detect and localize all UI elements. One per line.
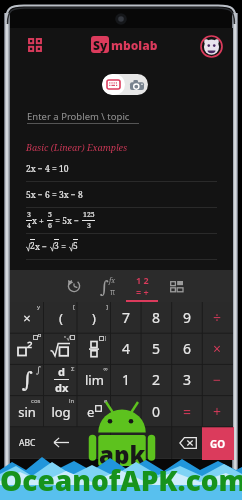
- button[interactable]: log: [44, 396, 78, 427]
- staticText: d: [58, 364, 65, 379]
- staticText: = 5x −: [53, 215, 82, 227]
- staticText: 125: [83, 210, 95, 220]
- staticText: 8: [152, 308, 161, 327]
- button[interactable]: =: [172, 396, 203, 427]
- staticText: e: [104, 397, 108, 405]
- staticText: ABC: [19, 437, 36, 449]
- button[interactable]: +: [202, 396, 233, 427]
- button[interactable]: lim: [77, 364, 111, 395]
- button[interactable]: (: [44, 302, 78, 333]
- button[interactable]: 5x − 6 = 3x − 8: [26, 182, 217, 208]
- staticText: |: [104, 334, 108, 342]
- staticText: log: [51, 403, 71, 421]
- staticText: ∫: [36, 365, 41, 375]
- button[interactable]: e: [77, 396, 111, 427]
- button[interactable]: ×: [202, 333, 233, 364]
- button[interactable]: ABC: [10, 427, 44, 458]
- button[interactable]: GO: [202, 427, 234, 460]
- staticText: 0: [152, 402, 161, 421]
- staticText: +: [213, 402, 222, 421]
- staticText: ∫: [100, 277, 109, 297]
- staticText: Σ: [71, 365, 75, 373]
- staticText: cos: [31, 397, 41, 405]
- staticText: .: [125, 403, 129, 421]
- button[interactable]: Enter a Problem \ topic: [27, 110, 139, 128]
- staticText: =: [183, 402, 192, 421]
- button[interactable]: 5: [141, 333, 172, 364]
- staticText: Basic (Linear) Examples: [26, 141, 128, 153]
- button[interactable]: Move left: [44, 427, 78, 458]
- staticText: 3: [54, 240, 59, 252]
- button[interactable]: 8: [141, 302, 172, 333]
- staticText: 5: [73, 240, 78, 252]
- button[interactable]: 2: [141, 364, 172, 395]
- button[interactable]: .: [111, 396, 142, 427]
- button[interactable]: 6: [172, 333, 203, 364]
- staticText: ): [92, 309, 96, 327]
- staticText: 2: [152, 370, 161, 389]
- staticText: ]: [106, 303, 108, 311]
- button[interactable]: ∫: [91, 270, 125, 302]
- staticText: ×: [213, 339, 222, 358]
- staticText: 3: [87, 221, 91, 231]
- staticText: (: [59, 309, 63, 327]
- button[interactable]: [10, 333, 44, 364]
- button[interactable]: Menu: [23, 33, 47, 57]
- button[interactable]: Move right: [77, 427, 111, 458]
- button[interactable]: ÷: [202, 302, 233, 333]
- button[interactable]: ⁿ: [44, 333, 78, 364]
- button[interactable]: Backspace: [172, 427, 203, 458]
- staticText: 6: [48, 221, 52, 231]
- staticText: Sy: [93, 37, 108, 53]
- staticText: [: [73, 303, 75, 311]
- button[interactable]: 0: [141, 396, 172, 427]
- staticText: 2: [30, 240, 35, 252]
- button[interactable]: Keyboard: [102, 74, 125, 95]
- staticText: 7: [122, 308, 131, 327]
- staticText: 2x − 4 = 10: [26, 163, 69, 175]
- staticText: 5x − 6 = 3x − 8: [26, 189, 83, 201]
- staticText: =: [59, 241, 69, 253]
- button[interactable]: Profile: [200, 35, 223, 58]
- staticText: 1 2: [136, 274, 149, 286]
- staticText: 3: [27, 210, 31, 220]
- staticText: −: [213, 370, 222, 389]
- button[interactable]: [57, 270, 91, 302]
- staticText: 5: [48, 210, 52, 220]
- button[interactable]: 9: [172, 302, 203, 333]
- button[interactable]: 4: [111, 333, 142, 364]
- staticText: ÷: [213, 308, 222, 327]
- staticText: 4: [27, 221, 31, 231]
- button[interactable]: −: [202, 364, 233, 395]
- button[interactable]: ∫: [10, 364, 44, 395]
- staticText: ∞: [103, 365, 108, 372]
- staticText: apk: [99, 438, 146, 471]
- button[interactable]: 2x − 4 = 10: [26, 156, 217, 182]
- staticText: ⁿ: [64, 334, 67, 341]
- staticText: 4: [122, 339, 131, 358]
- staticText: 9: [183, 308, 192, 327]
- button[interactable]: ): [77, 302, 111, 333]
- button[interactable]: 2: [26, 234, 217, 260]
- staticText: mbolab: [111, 37, 158, 53]
- button[interactable]: ×: [10, 302, 44, 333]
- staticText: Enter a Problem \ topic: [27, 110, 130, 123]
- staticText: ∫: [22, 368, 33, 392]
- button[interactable]: 7: [111, 302, 142, 333]
- button[interactable]: 3: [172, 364, 203, 395]
- button[interactable]: sin: [10, 396, 44, 427]
- staticText: y: [37, 303, 41, 311]
- button[interactable]: [159, 270, 193, 302]
- staticText: lim: [85, 371, 104, 389]
- button[interactable]: 3: [26, 208, 217, 234]
- staticText: 1: [122, 370, 131, 389]
- button[interactable]: Camera: [125, 74, 148, 95]
- button[interactable]: 1 2: [125, 270, 159, 302]
- staticText: ×: [23, 309, 31, 327]
- staticText: 6: [183, 339, 192, 358]
- button[interactable]: 1: [111, 364, 142, 395]
- button[interactable]: d: [44, 364, 78, 395]
- button[interactable]: |: [77, 333, 111, 364]
- staticText: dx: [55, 380, 69, 395]
- staticText: GO: [210, 437, 226, 451]
